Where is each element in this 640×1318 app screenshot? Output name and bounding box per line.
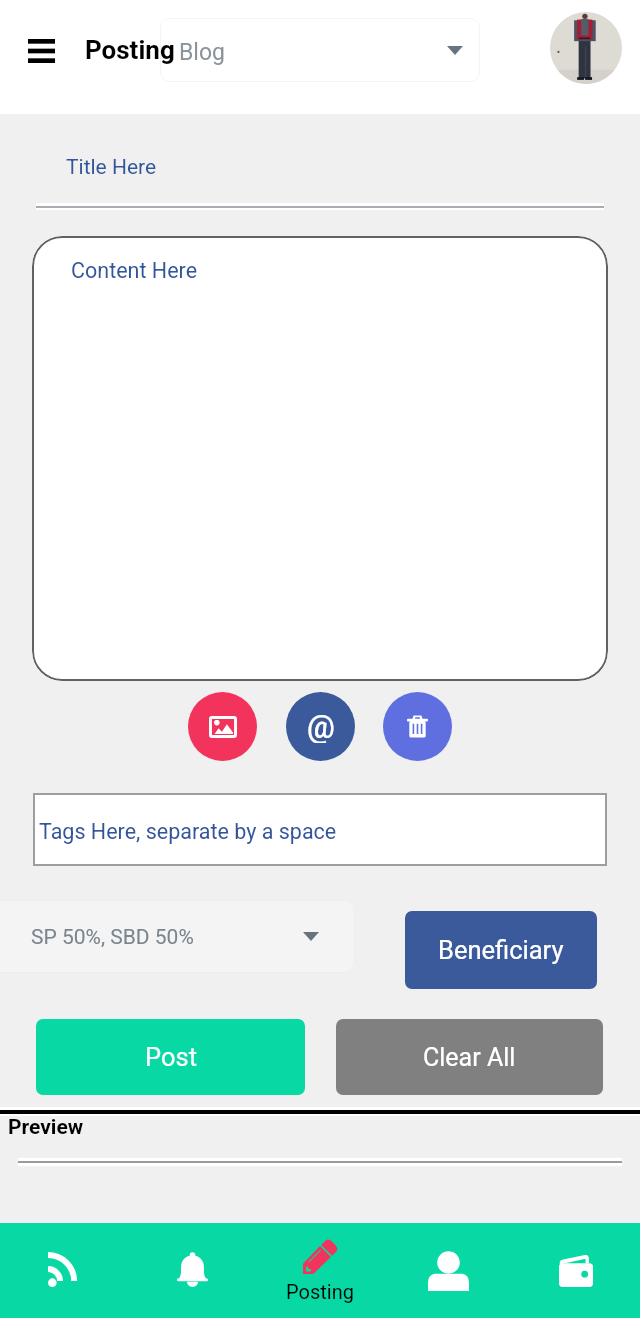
button[interactable]: Delete <box>383 692 452 761</box>
button[interactable]: Post <box>36 1019 305 1095</box>
staticText: Title Here <box>66 155 157 180</box>
staticText: SP 50%, SBD 50% <box>31 925 194 950</box>
button[interactable]: Beneficiary <box>405 911 597 989</box>
staticText: @ <box>307 709 335 743</box>
button[interactable]: Clear All <box>336 1019 603 1095</box>
button[interactable]: Mention user <box>286 692 355 761</box>
button[interactable]: Blog <box>160 18 480 82</box>
staticText: Content Here <box>71 258 198 283</box>
button[interactable]: Notifications <box>128 1223 256 1318</box>
button[interactable]: Feed <box>0 1223 128 1318</box>
staticText: Preview <box>8 1115 84 1140</box>
button[interactable]: SP 50%, SBD 50% <box>0 900 355 973</box>
staticText: Tags Here, separate by a space <box>39 819 337 844</box>
staticText: Blog <box>179 39 225 66</box>
button[interactable]: Menu <box>17 27 65 75</box>
staticText: Post <box>145 1042 197 1072</box>
button[interactable]: Wallet <box>512 1223 640 1318</box>
button[interactable]: Posting <box>256 1223 384 1318</box>
button[interactable]: Content Here <box>32 236 608 681</box>
staticText: Clear All <box>423 1043 516 1072</box>
staticText: Beneficiary <box>438 935 564 965</box>
button[interactable]: Profile <box>384 1223 512 1318</box>
button[interactable]: Tags Here, separate by a space <box>33 793 607 866</box>
button[interactable]: Profile <box>550 12 622 84</box>
staticText: Posting <box>85 35 175 65</box>
staticText: Posting <box>286 1280 354 1303</box>
button[interactable]: Add image <box>188 692 257 761</box>
